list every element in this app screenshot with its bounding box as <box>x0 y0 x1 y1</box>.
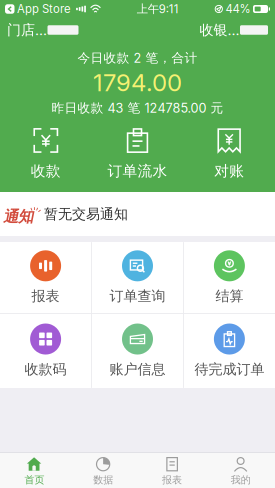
button[interactable]: 收银... <box>199 18 275 42</box>
button[interactable]: 订单流水 <box>92 128 183 180</box>
staticText: 订单流水 <box>107 162 167 180</box>
staticText: 收款码 <box>25 360 67 378</box>
button[interactable]: 收款 <box>0 128 92 180</box>
staticText: 报表 <box>162 474 182 486</box>
button[interactable]: 首页 <box>0 455 69 486</box>
staticText: 暂无交易通知 <box>44 205 128 223</box>
staticText: 昨日收款 43 笔 124785.00 元 <box>51 100 223 116</box>
staticText: 报表 <box>32 287 60 305</box>
button[interactable]: 订单查询 <box>92 242 183 313</box>
button[interactable]: 数据 <box>69 455 138 486</box>
staticText: 收款 <box>31 162 61 180</box>
button[interactable]: 我的 <box>206 455 275 486</box>
staticText: 账户信息 <box>109 360 165 378</box>
staticText: 待完成订单 <box>194 360 264 378</box>
staticText: 对账 <box>214 162 244 180</box>
staticText: App Store <box>17 2 71 16</box>
button[interactable]: 待完成订单 <box>184 314 275 388</box>
staticText: 订单查询 <box>109 287 165 305</box>
button[interactable]: 报表 <box>0 242 91 313</box>
staticText: 我的 <box>231 474 251 486</box>
staticText: 上午9:11 <box>137 2 179 16</box>
button[interactable]: 门店... <box>0 18 78 42</box>
staticText: 首页 <box>24 474 44 486</box>
staticText: 收银... <box>199 21 239 39</box>
staticText: 今日收款 2 笔，合计 <box>77 50 197 66</box>
button[interactable]: 结算 <box>184 242 275 313</box>
button[interactable]: 账户信息 <box>92 314 183 388</box>
button[interactable]: 报表 <box>137 455 206 486</box>
button[interactable]: 收款码 <box>0 314 91 388</box>
button[interactable]: 对账 <box>183 128 275 180</box>
staticText: 门店... <box>7 21 47 39</box>
staticText: 结算 <box>215 287 243 305</box>
staticText: 通知 <box>3 207 33 226</box>
button[interactable]: 通知 <box>0 192 275 236</box>
staticText: 数据 <box>93 474 113 486</box>
staticText: 1794.00 <box>93 68 182 97</box>
staticText: 44% <box>225 2 250 16</box>
